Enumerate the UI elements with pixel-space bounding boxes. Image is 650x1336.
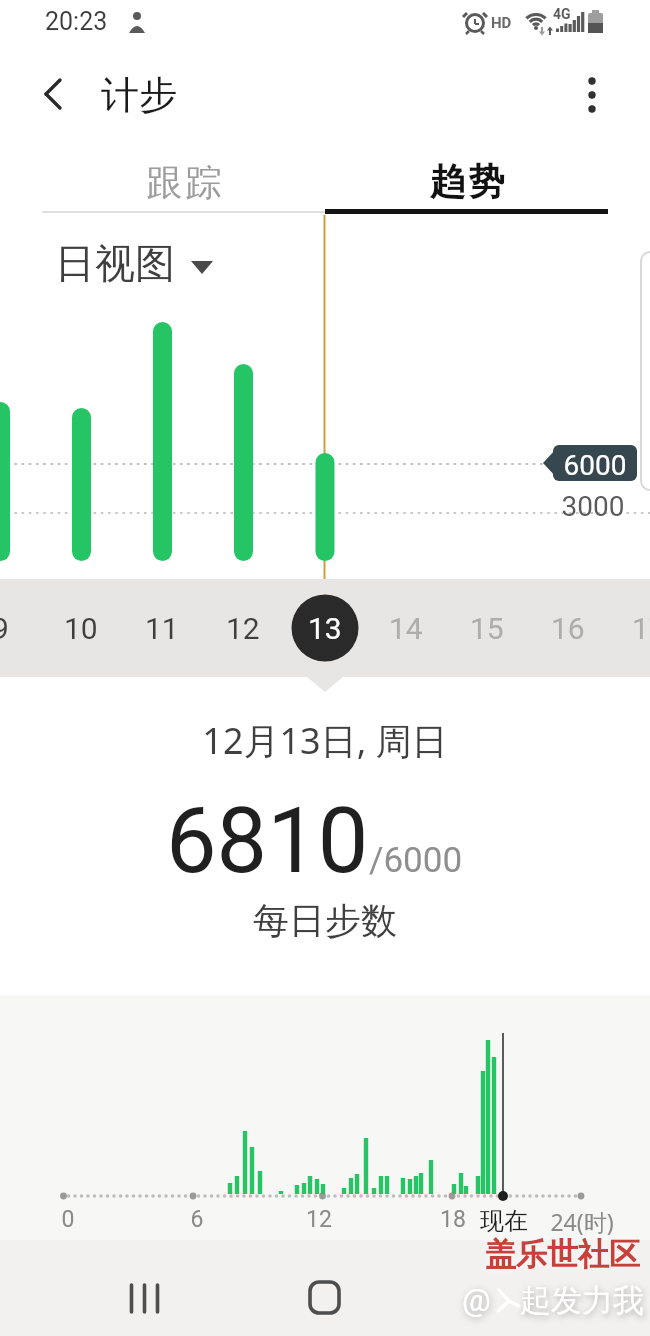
button[interactable]: 16 [528,596,608,660]
staticText: 6000 [553,449,637,482]
staticText: 6810 [166,789,369,894]
button[interactable] [460,1255,550,1325]
button[interactable] [280,1255,370,1325]
staticText: 24(时) [542,1206,622,1237]
button[interactable]: 15 [447,596,527,660]
staticText: /6000 [369,840,463,881]
button[interactable] [570,70,616,120]
staticText: 6 [167,1206,227,1233]
staticText: 0 [38,1206,98,1233]
staticText: 9 [0,611,9,646]
staticText: 现在 [469,1206,539,1236]
button[interactable]: 日视图 [48,236,224,286]
staticText: 20:23 [45,7,135,36]
button[interactable]: 11 [122,596,202,660]
staticText: 17 [632,611,650,646]
staticText: 16 [551,611,585,646]
button[interactable]: 13 [285,596,365,660]
staticText: 日视图 [55,238,175,288]
staticText: 15 [470,611,504,646]
button[interactable]: 12 [203,596,283,660]
staticText: 趋势 [428,159,506,204]
staticText: 起发力我 [520,1281,650,1320]
button[interactable]: 10 [41,596,121,660]
button[interactable]: 跟踪 [42,151,325,213]
staticText: HD [491,14,531,32]
staticText: @ [462,1281,522,1319]
staticText: 盖乐世社区 [440,1235,640,1274]
button[interactable]: 9 [0,596,40,660]
staticText: 11 [145,611,179,646]
button[interactable] [30,68,80,120]
button[interactable]: 趋势 [325,150,608,212]
staticText: 4G [553,6,583,22]
staticText: 每日步数 [0,898,650,943]
staticText: 10 [64,611,98,646]
button[interactable] [100,1255,190,1325]
staticText: 3000 [551,490,635,523]
staticText: 计步 [101,71,231,119]
staticText: 12月13日, 周日 [0,716,650,765]
button[interactable]: 14 [366,596,446,660]
staticText: 13 [308,611,342,646]
staticText: 跟踪 [145,160,223,205]
button[interactable]: 17 [609,596,650,660]
staticText: 12 [289,1206,349,1233]
staticText: 18 [423,1206,483,1233]
staticText: 12 [226,611,260,646]
staticText: 14 [389,611,423,646]
